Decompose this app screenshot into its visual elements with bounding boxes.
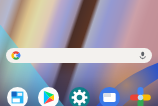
button[interactable]: Settings: [69, 87, 90, 106]
button[interactable]: Play Store: [38, 87, 59, 106]
button[interactable]: Google Photos: [130, 87, 151, 106]
button[interactable]: Files: [99, 87, 120, 106]
button[interactable]: Photos: [7, 87, 28, 106]
button[interactable]: [6, 48, 152, 63]
